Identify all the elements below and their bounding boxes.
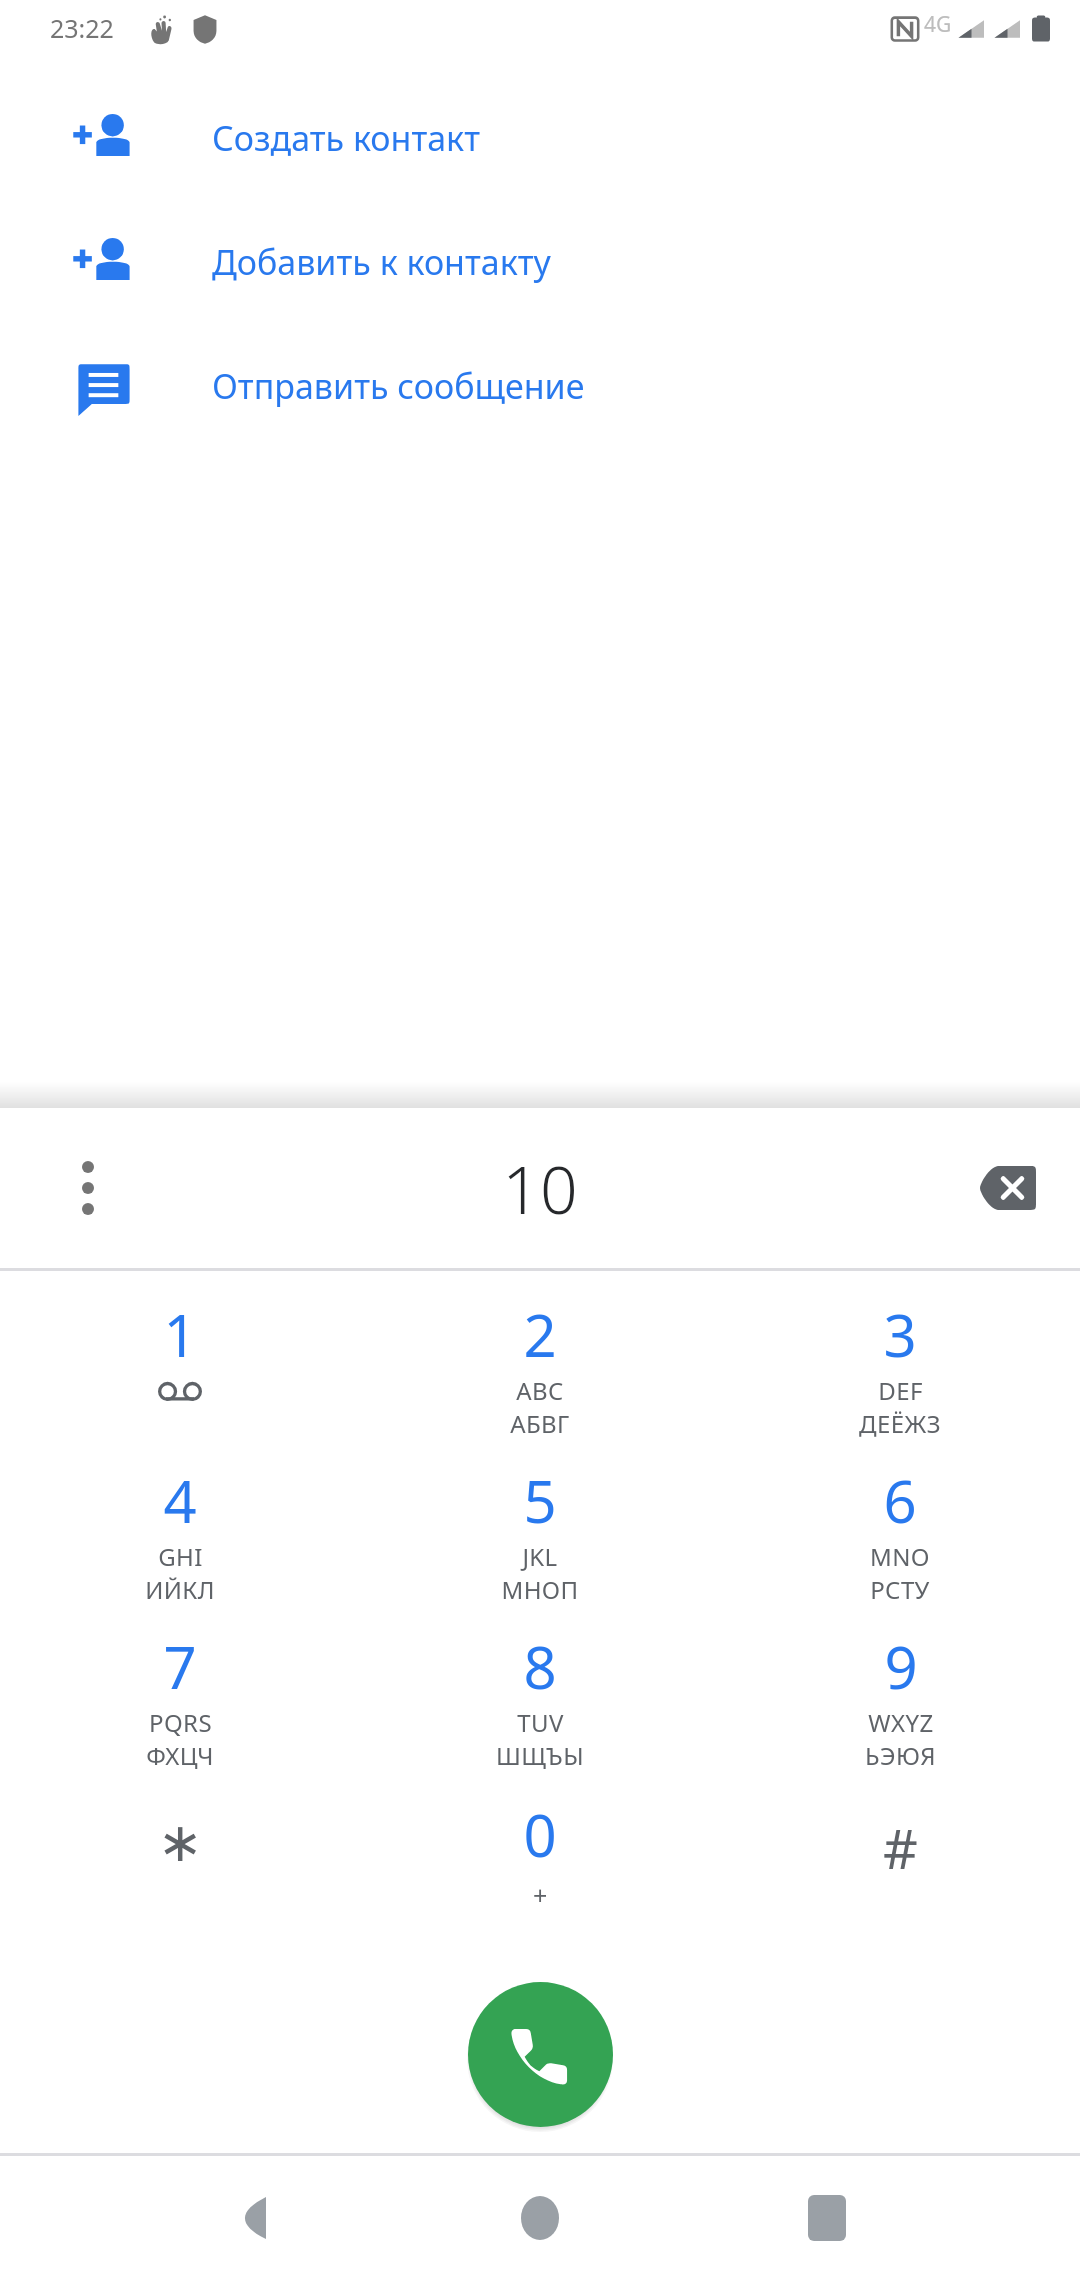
staticText: Добавить к контакту [212,239,551,285]
staticText: 9 [884,1627,918,1706]
staticText: 6 [883,1461,917,1540]
button[interactable]: 2 [360,1295,720,1461]
button[interactable]: More options [40,1140,136,1236]
staticText: GHI [158,1540,203,1573]
staticText: 7 [163,1627,197,1706]
staticText: 10 [502,1143,578,1233]
staticText: 4 [163,1461,197,1540]
staticText: МНОП [501,1573,579,1606]
staticText: TUV [517,1706,564,1739]
button[interactable]: 5 [360,1461,720,1627]
staticText: 4G [924,10,952,39]
button[interactable]: 0 [360,1793,720,1959]
staticText: АБВГ [510,1407,570,1440]
staticText: 8 [523,1627,557,1706]
staticText: DEF [878,1374,923,1407]
staticText: 1 [163,1295,197,1374]
staticText: Создать контакт [212,115,480,161]
button[interactable]: Call [467,1981,613,2127]
staticText: JKL [522,1540,558,1573]
staticText: 0 [523,1795,557,1874]
button[interactable]: ∗ [0,1793,360,1959]
button[interactable]: 6 [720,1461,1080,1627]
staticText: ∗ [157,1811,203,1874]
staticText: ФХЦЧ [146,1739,214,1772]
button[interactable]: Отправить сообщение [0,324,1080,448]
staticText: MNO [870,1540,930,1573]
staticText: ИЙКЛ [145,1573,215,1606]
staticText: WXYZ [868,1706,934,1739]
button[interactable]: 3 [720,1295,1080,1461]
button[interactable]: Home [480,2158,600,2278]
staticText: РСТУ [870,1573,930,1606]
button[interactable]: 8 [360,1627,720,1793]
staticText: + [533,1878,548,1912]
button[interactable]: Recent apps [767,2158,887,2278]
staticText: Отправить сообщение [212,363,585,409]
button[interactable]: Создать контакт [0,76,1080,200]
staticText: # [883,1811,918,1885]
staticText: 23:22 [50,11,114,45]
button[interactable]: Delete [960,1140,1056,1236]
button[interactable]: 4 [0,1461,360,1627]
button[interactable]: Back [188,2158,308,2278]
button[interactable]: 1 [0,1295,360,1461]
staticText: 2 [523,1295,557,1374]
staticText: ЬЭЮЯ [865,1739,936,1772]
staticText: 5 [523,1461,557,1540]
button[interactable]: Добавить к контакту [0,200,1080,324]
staticText: ШЩЪЫ [496,1739,584,1772]
button[interactable]: 9 [720,1627,1080,1793]
staticText: PQRS [149,1706,212,1739]
staticText: 3 [883,1295,917,1374]
staticText: ABC [516,1374,564,1407]
button[interactable]: # [720,1793,1080,1959]
button[interactable]: 7 [0,1627,360,1793]
staticText: ДЕЁЖЗ [859,1407,941,1440]
